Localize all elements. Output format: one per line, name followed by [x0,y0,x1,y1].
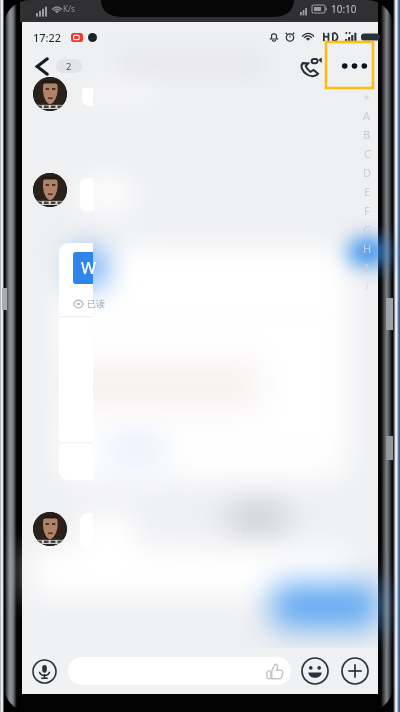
button[interactable] [68,657,291,685]
staticText: K/s [63,3,75,14]
staticText: W [81,257,96,279]
staticText: 17:22 [33,30,62,45]
staticText: 已读 [87,298,105,309]
staticText: A [363,108,371,123]
button[interactable]: Contact avatar [33,77,67,111]
button[interactable]: Add attachment [341,657,369,685]
button[interactable]: Voice message [32,659,57,684]
button[interactable]: Back [22,44,92,88]
button[interactable]: Contact avatar [33,512,67,546]
staticText: 10:10 [331,2,357,16]
staticText: G [363,222,372,237]
staticText: B [363,127,371,142]
staticText: H [363,241,372,256]
staticText: F [364,203,370,218]
staticText: J [366,281,368,291]
staticText: D [363,165,372,180]
button[interactable]: Emoji [301,657,329,685]
button[interactable]: Contact avatar [33,173,67,207]
button[interactable]: Video call [291,44,331,88]
staticText: 2 [66,60,72,73]
button[interactable]: More options [331,44,378,88]
staticText: E [364,184,371,199]
staticText: ★ [363,93,371,102]
staticText: C [364,146,371,161]
staticText: I [365,260,369,275]
